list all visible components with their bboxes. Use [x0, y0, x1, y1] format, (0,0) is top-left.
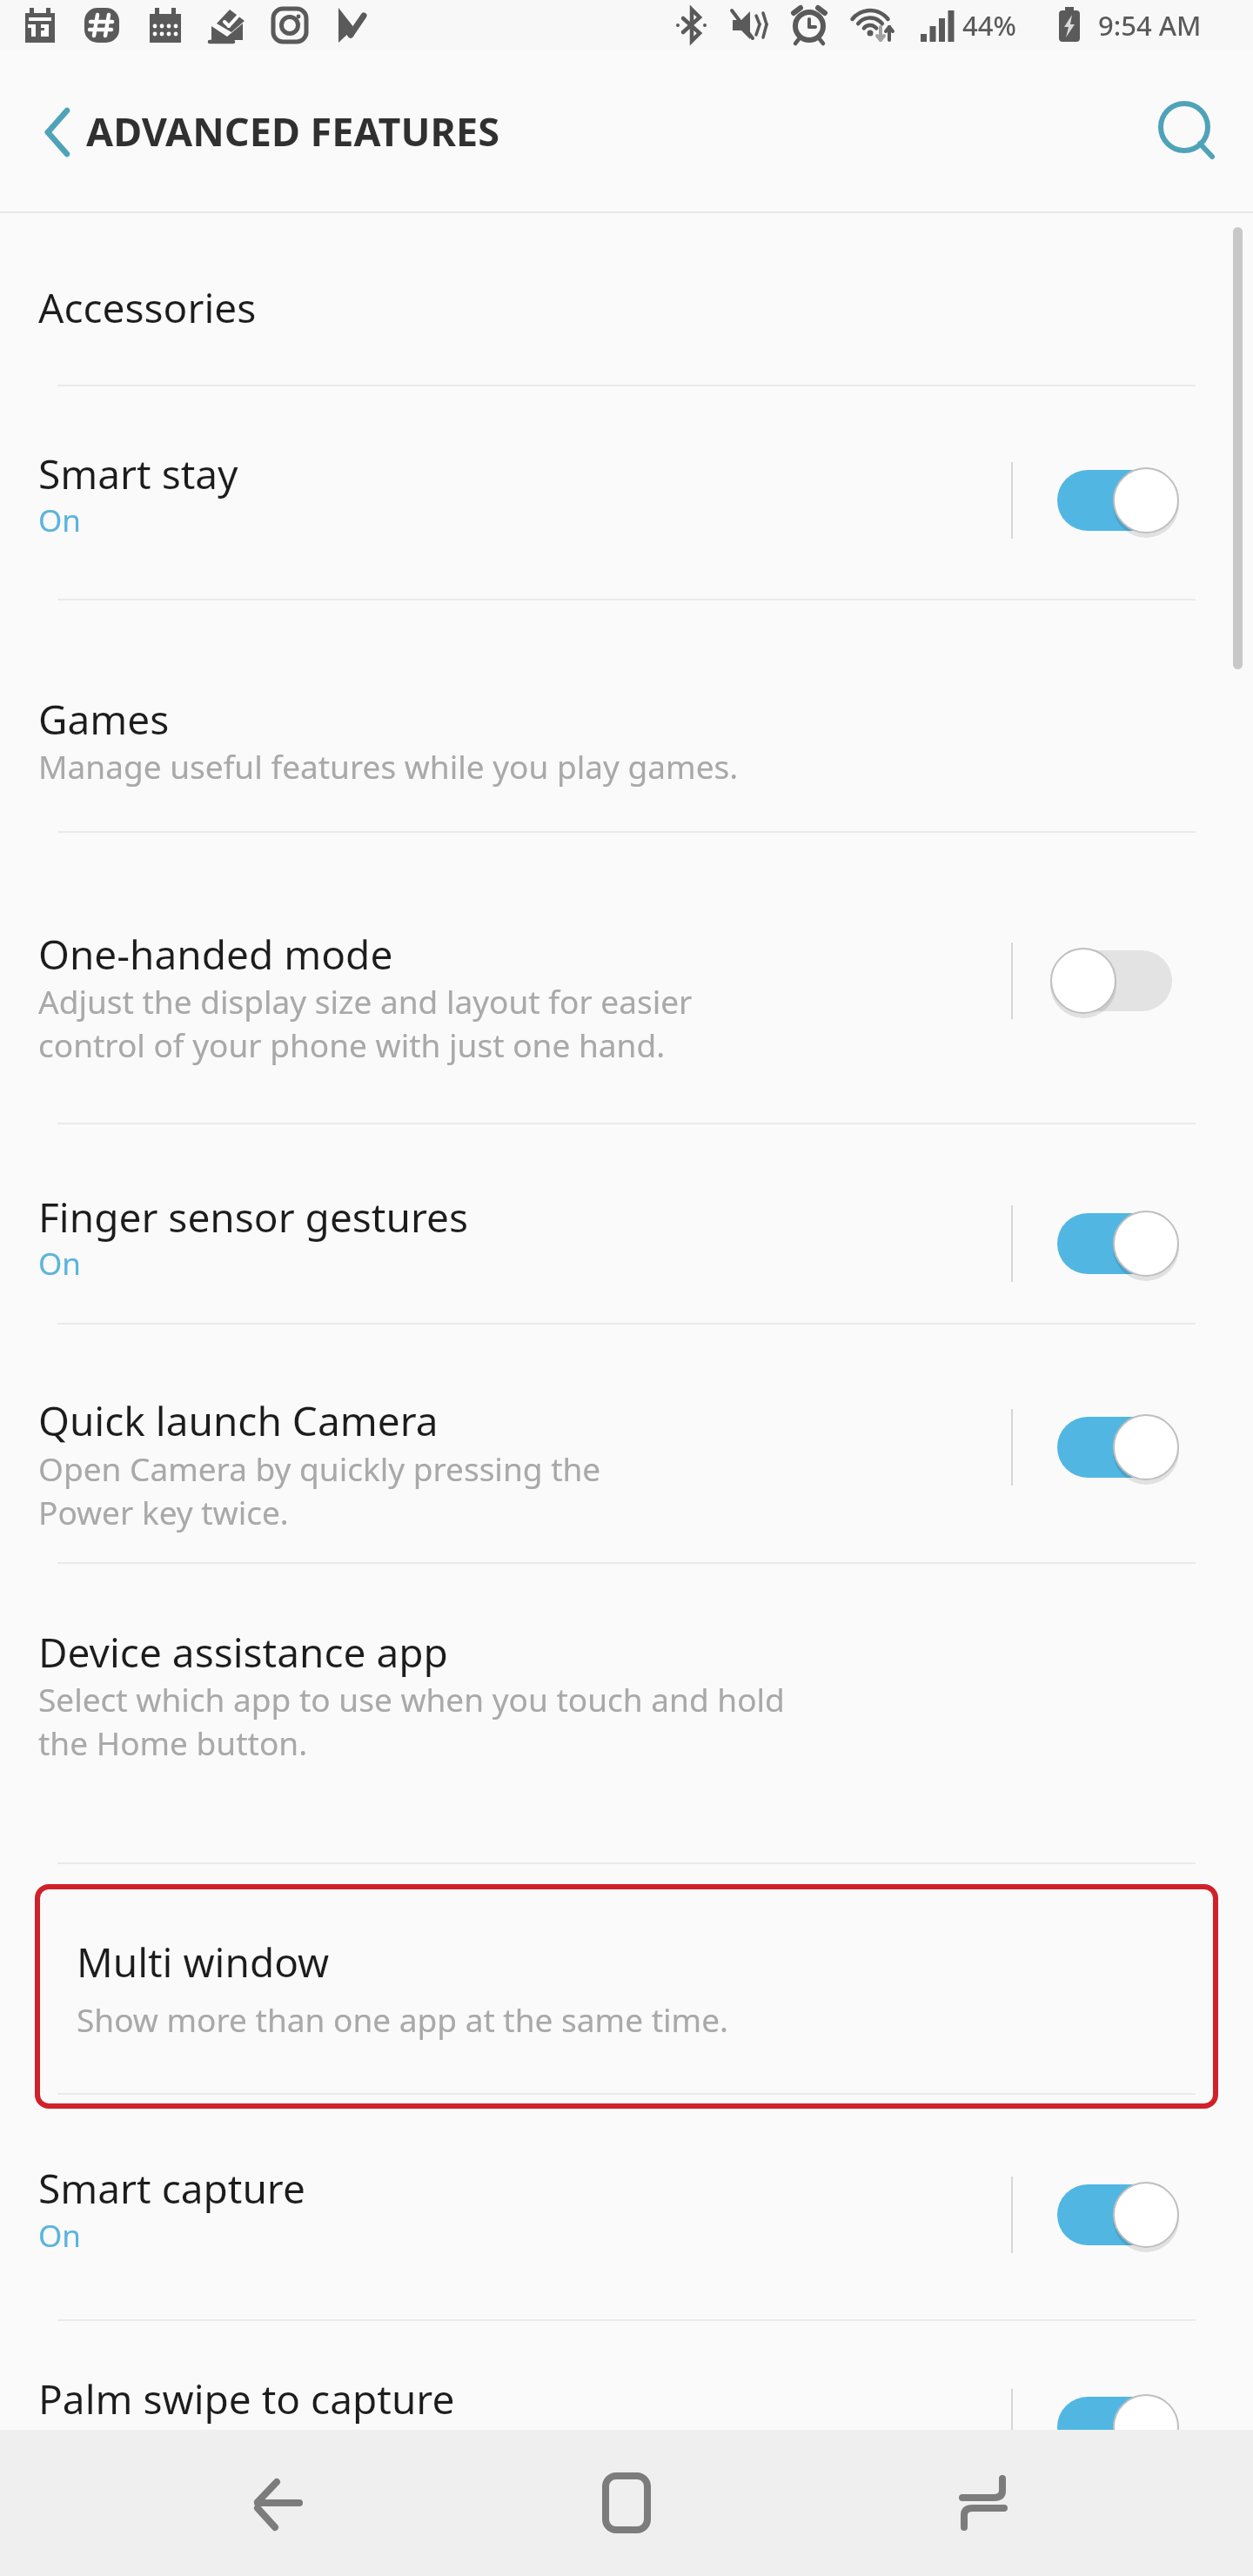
button[interactable]: Device assistance app [0, 1562, 1253, 1862]
button[interactable]: Accessories [0, 213, 1253, 385]
staticText: Multi window [77, 1935, 330, 1989]
button[interactable]: Quick launch Camera [0, 1323, 1253, 1562]
staticText: Adjust the display size and layout for e… [38, 979, 693, 1023]
staticText: Manage useful features while you play ga… [38, 744, 739, 788]
button[interactable]: Back [209, 2430, 348, 2576]
staticText: On [38, 500, 81, 541]
staticText: Accessories [38, 280, 257, 335]
button[interactable]: One-handed mode switch [1049, 937, 1215, 1024]
staticText: Smart stay [38, 446, 238, 501]
button[interactable]: Search [1138, 84, 1234, 180]
button[interactable]: Quick launch Camera switch [1049, 1404, 1215, 1491]
button[interactable]: Palm swipe to capture [0, 2319, 1253, 2430]
button[interactable]: Home [557, 2430, 696, 2576]
staticText: 44% [962, 7, 1016, 44]
staticText: One-handed mode [38, 927, 393, 982]
staticText: Games [38, 692, 170, 747]
staticText: Palm swipe to capture [38, 2371, 455, 2426]
button[interactable]: Finger sensor gestures switch [1049, 1200, 1215, 1287]
button[interactable]: Smart stay [0, 385, 1253, 599]
staticText: 9:54 AM [1098, 7, 1202, 44]
button[interactable]: Smart capture switch [1049, 2171, 1215, 2258]
staticText: Quick launch Camera [38, 1393, 439, 1448]
button[interactable]: One-handed mode [0, 831, 1253, 1123]
staticText: the Home button. [38, 1721, 308, 1764]
staticText: Select which app to use when you touch a… [38, 1677, 785, 1721]
staticText: Device assistance app [38, 1625, 448, 1680]
button[interactable]: Recent apps [914, 2430, 1053, 2576]
button[interactable]: Games [0, 599, 1253, 831]
staticText: On [38, 2215, 81, 2257]
button[interactable]: Navigate up [12, 89, 99, 176]
button[interactable]: Multi window [35, 1884, 1218, 2109]
staticText: On [38, 1243, 81, 1285]
button[interactable]: Palm swipe to capture switch [1049, 2384, 1215, 2471]
staticText: Smart capture [38, 2161, 305, 2216]
staticText: Open Camera by quickly pressing the [38, 1446, 601, 1490]
button[interactable]: Smart capture [0, 2093, 1253, 2319]
staticText: Finger sensor gestures [38, 1190, 468, 1244]
staticText: Show more than one app at the same time. [77, 1997, 728, 2041]
staticText: Power key twice. [38, 1490, 289, 1533]
button[interactable]: Smart stay switch [1049, 457, 1215, 544]
staticText: ADVANCED FEATURES [86, 104, 499, 158]
button[interactable]: Finger sensor gestures [0, 1123, 1253, 1323]
staticText: control of your phone with just one hand… [38, 1023, 666, 1066]
